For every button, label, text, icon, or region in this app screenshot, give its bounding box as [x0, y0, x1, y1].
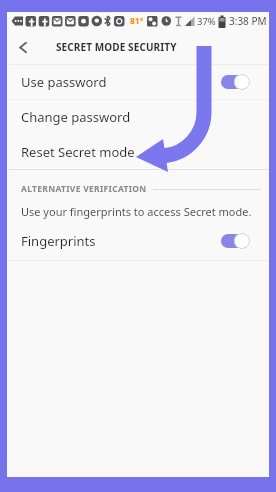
button[interactable]: Change password	[7, 100, 269, 134]
staticText: 3:38 PM	[229, 14, 267, 28]
button[interactable]: Use password	[7, 65, 269, 99]
staticText: Reset Secret mode	[21, 143, 135, 161]
button[interactable]	[221, 233, 250, 249]
staticText: Use password	[21, 73, 107, 91]
staticText: 81°	[130, 15, 144, 27]
staticText: Change password	[21, 108, 131, 126]
button[interactable]	[7, 30, 40, 64]
staticText: SECRET MODE SECURITY	[56, 40, 177, 54]
staticText: Use your fingerprints to access Secret m…	[21, 204, 252, 219]
button[interactable]: Fingerprints	[7, 223, 269, 258]
staticText: Fingerprints	[21, 232, 96, 250]
button[interactable]	[221, 74, 250, 90]
button[interactable]: Reset Secret mode	[7, 134, 269, 169]
staticText: ALTERNATIVE VERIFICATION	[21, 183, 147, 195]
staticText: 37%	[197, 15, 216, 28]
